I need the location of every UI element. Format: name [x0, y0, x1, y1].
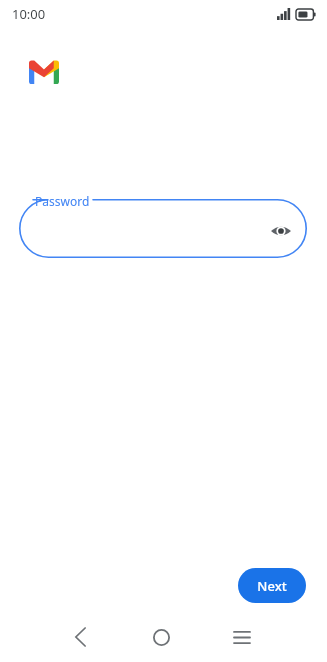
- button[interactable]: Recent apps: [218, 613, 266, 661]
- button[interactable]: Home: [137, 613, 185, 661]
- button[interactable]: Next: [238, 568, 306, 603]
- button[interactable]: Show password: [264, 214, 298, 248]
- button[interactable]: Password: [19, 199, 307, 258]
- button[interactable]: Back: [56, 613, 104, 661]
- staticText: Next: [257, 577, 287, 595]
- staticText: Password: [35, 193, 90, 209]
- staticText: 10:00: [12, 5, 46, 23]
